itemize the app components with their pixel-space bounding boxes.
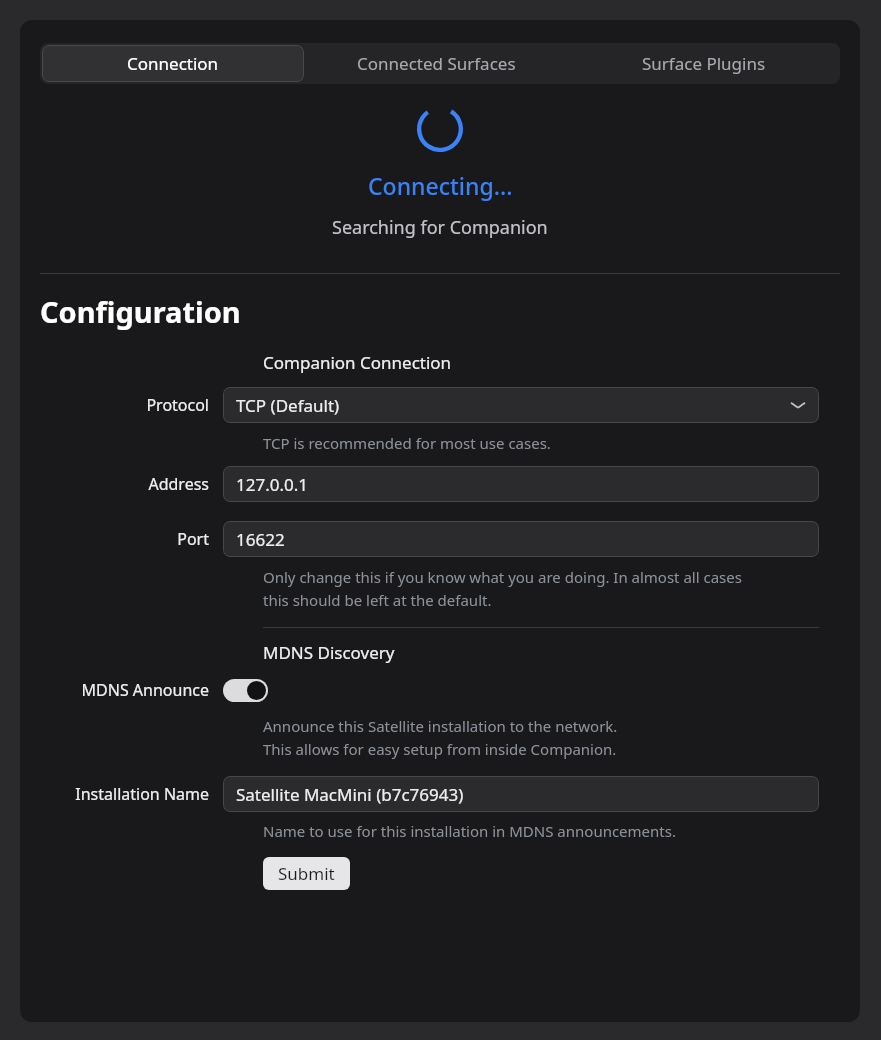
button[interactable]: 127.0.0.1: [223, 466, 819, 502]
button[interactable]: Connected Surfaces: [304, 45, 568, 82]
button[interactable]: MDNS Announce toggle: [223, 679, 268, 702]
button[interactable]: Connection: [42, 45, 304, 82]
staticText: Searching for Companion: [332, 215, 548, 240]
staticText: MDNS Announce: [81, 679, 209, 701]
staticText: TCP (Default): [236, 394, 340, 417]
staticText: Submit: [278, 862, 335, 885]
staticText: 127.0.0.1: [236, 473, 309, 496]
staticText: Only change this if you know what you ar…: [263, 567, 742, 610]
staticText: Companion Connection: [263, 351, 452, 374]
staticText: TCP is recommended for most use cases.: [263, 433, 551, 453]
other: Open protocol dropdown: [791, 398, 805, 412]
staticText: MDNS Discovery: [263, 641, 395, 664]
staticText: Address: [148, 473, 209, 495]
staticText: Connected Surfaces: [357, 52, 516, 75]
staticText: Configuration: [40, 292, 241, 331]
button[interactable]: TCP (Default): [223, 387, 819, 423]
button[interactable]: 16622: [223, 521, 819, 557]
button[interactable]: Satellite MacMini (b7c76943): [223, 776, 819, 812]
staticText: Name to use for this installation in MDN…: [263, 821, 676, 841]
staticText: Port: [177, 528, 209, 550]
staticText: Satellite MacMini (b7c76943): [236, 783, 464, 806]
button[interactable]: Submit: [263, 857, 350, 890]
staticText: Connection: [127, 52, 219, 75]
staticText: 16622: [236, 528, 285, 551]
button[interactable]: Surface Plugins: [568, 45, 840, 82]
staticText: Installation Name: [75, 783, 209, 805]
staticText: Protocol: [146, 394, 209, 416]
staticText: Connecting...: [368, 170, 513, 201]
staticText: Surface Plugins: [642, 52, 766, 75]
staticText: Announce this Satellite installation to …: [263, 716, 618, 759]
